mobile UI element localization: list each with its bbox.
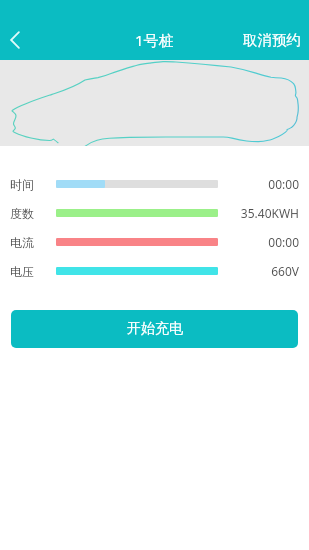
staticText: 时间 <box>10 177 34 192</box>
staticText: 电流 <box>10 235 34 250</box>
staticText: 35.40KWH <box>240 205 299 221</box>
staticText: 660V <box>271 263 299 279</box>
staticText: 00:00 <box>268 176 299 192</box>
button[interactable]: 开始充电 <box>11 310 298 348</box>
staticText: 开始充电 <box>127 320 183 338</box>
staticText: 电压 <box>10 264 34 279</box>
staticText: 取消预约 <box>243 31 301 49</box>
button[interactable]: 取消预约 <box>234 20 309 60</box>
button[interactable]: Back <box>0 25 30 55</box>
staticText: 1号桩 <box>135 30 174 50</box>
staticText: 00:00 <box>268 234 299 250</box>
staticText: 度数 <box>10 206 34 221</box>
